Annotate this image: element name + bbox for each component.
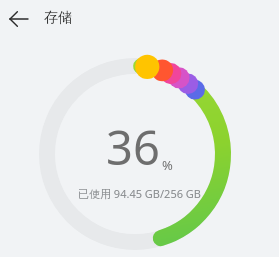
staticText: 存储 — [44, 9, 72, 27]
button[interactable]: Back — [2, 6, 36, 32]
staticText: 已使用 94.45 GB/256 GB — [78, 186, 201, 201]
staticText: % — [162, 156, 173, 174]
staticText: 36 — [106, 115, 160, 179]
